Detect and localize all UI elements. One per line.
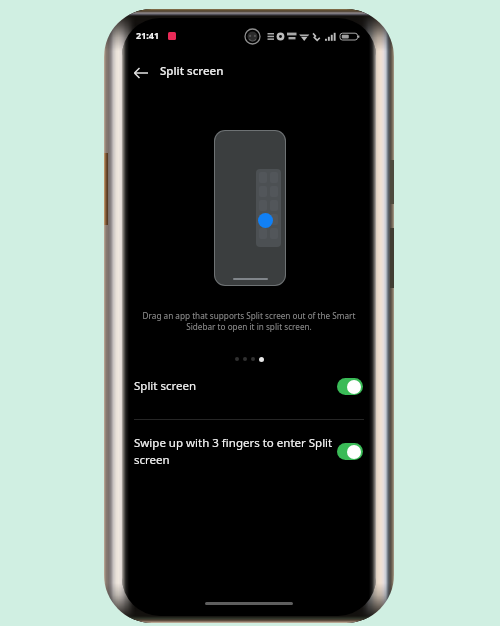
button[interactable]: Toggle Split screen [337, 378, 363, 395]
button[interactable]: Toggle Swipe up with 3 fingers to enter … [337, 443, 363, 460]
staticText: 21:41 [136, 29, 160, 41]
staticText: Drag an app that supports Split screen o… [135, 310, 363, 333]
staticText: Swipe up with 3 fingers to enter Split s… [134, 435, 334, 468]
button[interactable]: Split screen [122, 363, 376, 409]
button[interactable]: Swipe up with 3 fingers to enter Split s… [122, 422, 376, 480]
staticText: Split screen [134, 378, 334, 394]
staticText: Split screen [160, 63, 224, 79]
button[interactable]: Back [126, 58, 156, 88]
